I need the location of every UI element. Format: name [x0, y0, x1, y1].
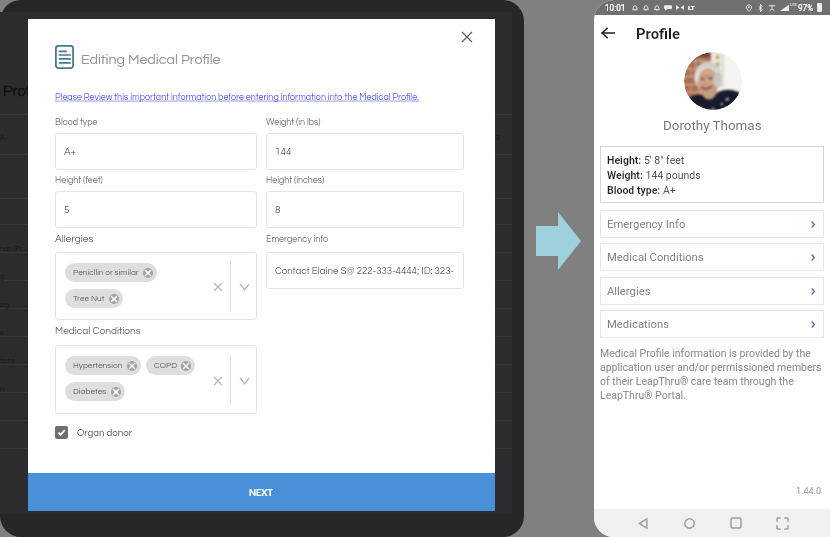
staticText: NEXT	[249, 487, 274, 498]
staticText: s	[0, 329, 4, 336]
button[interactable]: Close	[451, 21, 483, 53]
staticText: COPD	[154, 361, 177, 370]
button[interactable]: Recents	[725, 512, 747, 534]
staticText: Profile	[3, 84, 45, 99]
button[interactable]: COPD	[154, 356, 191, 375]
button[interactable]: Back	[594, 19, 622, 47]
button[interactable]: Emergency Info	[600, 210, 824, 238]
button[interactable]: Expand	[238, 374, 251, 387]
staticText: Blood type	[55, 118, 98, 127]
staticText: Penicllin or similar	[73, 268, 139, 277]
button[interactable]: Organ donor	[55, 426, 133, 439]
staticText: Medications	[607, 318, 669, 331]
staticText: Weight: 144 pounds	[607, 169, 701, 181]
staticText: tions	[0, 357, 16, 364]
staticText: 1.44.0	[796, 486, 821, 497]
staticText: Medical Conditions	[55, 326, 141, 336]
staticText: n	[0, 385, 4, 392]
staticText: 13	[492, 134, 500, 141]
staticText: 5	[64, 205, 70, 215]
staticText: 10:01	[605, 3, 626, 13]
staticText: Height (inches)	[266, 176, 325, 185]
staticText: 8	[275, 205, 281, 215]
staticText: A+	[64, 147, 77, 157]
staticText: Medical Conditions	[607, 251, 704, 264]
staticText: Medical Profile information is provided …	[600, 347, 826, 402]
staticText: Hypertension	[73, 361, 123, 370]
staticText: LT	[688, 4, 695, 11]
staticText: g	[0, 273, 5, 280]
staticText: Height: 5' 8" feet	[607, 154, 685, 166]
button[interactable]: NEXT	[28, 473, 495, 511]
staticText: Profile	[636, 25, 680, 42]
button[interactable]: Expand	[238, 280, 251, 293]
staticText: Diabetes	[73, 387, 107, 396]
staticText: Allergies	[55, 234, 94, 244]
button[interactable]: Medications	[600, 310, 824, 338]
staticText: Tree Nut	[73, 294, 105, 303]
staticText: nan (Pr	[0, 245, 23, 252]
button[interactable]: Hypertension	[73, 356, 137, 375]
button[interactable]: Medical Conditions	[600, 243, 824, 271]
button[interactable]: Tree Nut	[73, 289, 119, 308]
staticText: zig	[0, 301, 9, 308]
staticText: Please Review this important information…	[55, 93, 419, 102]
staticText: Editing Medical Profile	[81, 52, 221, 67]
button[interactable]: Fullscreen	[771, 512, 793, 534]
staticText: A+	[0, 134, 9, 141]
button[interactable]: Allergies	[600, 277, 824, 305]
staticText: Allergies	[607, 285, 651, 298]
button[interactable]: Penicllin or similar	[73, 263, 153, 282]
button[interactable]: Clear	[211, 374, 224, 387]
staticText: 97%	[798, 3, 814, 13]
staticText: Emergency info	[266, 235, 328, 244]
staticText: 144	[275, 147, 292, 157]
staticText: Weight (in lbs)	[266, 118, 321, 127]
staticText: Contact Elaine S@ 222-333-4444; ID: 323-	[275, 266, 454, 276]
staticText: Dorothy Thomas	[663, 118, 762, 134]
button[interactable]: Diabetes	[73, 382, 121, 401]
staticText: Organ donor	[77, 428, 133, 438]
button[interactable]: Back	[632, 512, 654, 534]
staticText: Emergency Info	[607, 218, 686, 231]
button[interactable]: Home	[678, 512, 700, 534]
staticText: Height (feet)	[55, 176, 103, 185]
staticText: Blood type: A+	[607, 184, 676, 196]
button[interactable]: Clear	[211, 280, 224, 293]
staticText: LTE	[790, 2, 797, 7]
